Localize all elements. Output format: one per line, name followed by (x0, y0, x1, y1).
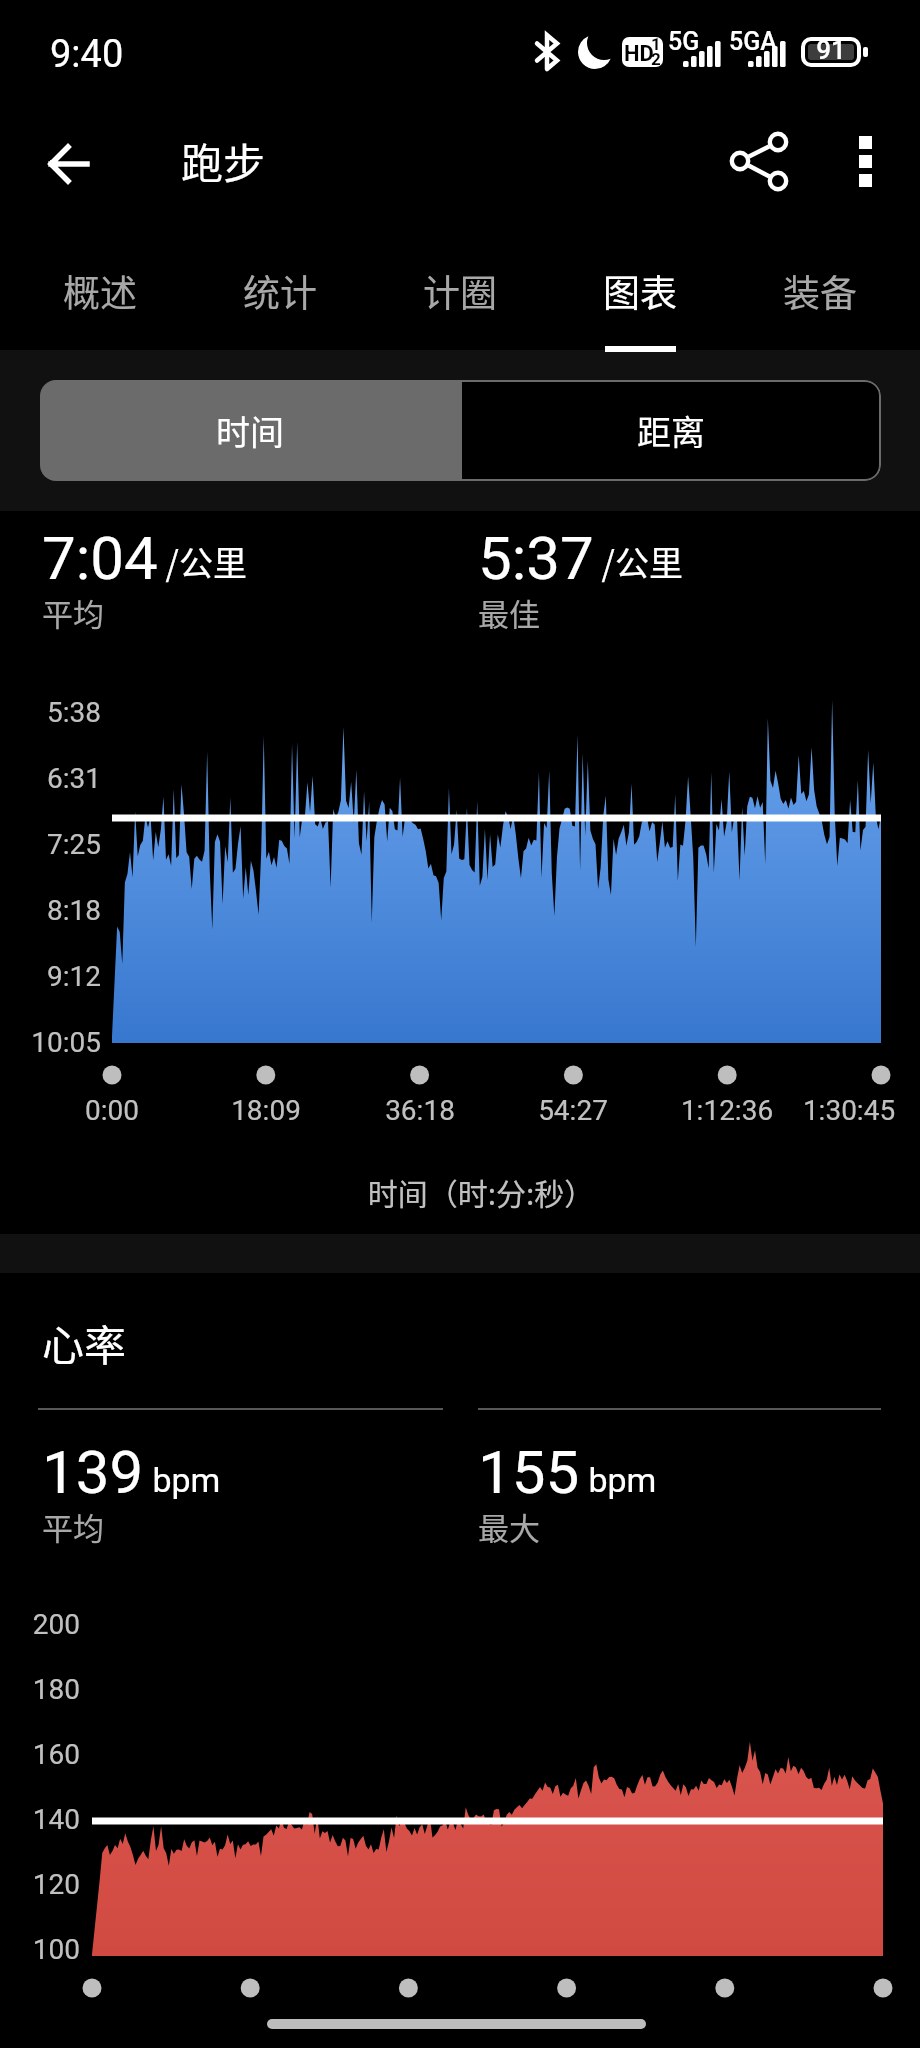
staticText: 5:37 (478, 523, 594, 583)
staticText: 5G (668, 27, 700, 56)
staticText: 54:27 (523, 1094, 623, 1127)
staticText: 36:18 (370, 1094, 470, 1127)
staticText: 9:12 (0, 960, 101, 993)
button[interactable]: 统计 (190, 234, 370, 350)
staticText: 最大 (478, 1504, 540, 1549)
staticText: 图表 (603, 264, 677, 318)
staticText: bpm (580, 1460, 657, 1500)
button[interactable]: 概述 (10, 234, 190, 350)
staticText: 6:31 (0, 762, 101, 795)
button[interactable]: 时间 (40, 380, 460, 481)
staticText: 9:40 (50, 32, 124, 77)
staticText: /公里 (158, 537, 247, 586)
staticText: 160 (0, 1738, 80, 1771)
staticText: 91 (812, 35, 850, 65)
staticText: 5GA (729, 27, 777, 56)
staticText: 200 (0, 1608, 80, 1641)
button[interactable]: 计圈 (370, 234, 550, 350)
staticText: 180 (0, 1673, 80, 1706)
staticText: 统计 (243, 264, 317, 318)
button[interactable]: Back (29, 124, 109, 204)
staticText: 100 (0, 1933, 80, 1966)
staticText: 18:09 (216, 1094, 316, 1127)
staticText: 0:00 (77, 1094, 147, 1127)
staticText: 10:05 (0, 1026, 101, 1059)
staticText: 平均 (42, 590, 104, 635)
staticText: 概述 (63, 264, 137, 318)
staticText: 心率 (42, 1312, 127, 1373)
button[interactable]: 装备 (730, 234, 910, 350)
staticText: 1 (651, 34, 661, 54)
staticText: 2 (651, 49, 661, 69)
button[interactable]: 距离 (460, 380, 881, 481)
staticText: 计圈 (423, 264, 497, 318)
staticText: /公里 (594, 537, 683, 586)
staticText: 140 (0, 1803, 80, 1836)
staticText: HD (624, 41, 654, 67)
staticText: 7:25 (0, 828, 101, 861)
button[interactable]: More options (825, 121, 905, 201)
staticText: 最佳 (478, 590, 540, 635)
button[interactable]: 图表 (550, 234, 730, 350)
staticText: 7:04 (42, 523, 158, 583)
staticText: 时间 (216, 406, 284, 455)
staticText: 装备 (783, 264, 857, 318)
staticText: 5:38 (0, 696, 101, 729)
staticText: 跑步 (181, 130, 266, 191)
staticText: 1:30:45 (784, 1094, 914, 1127)
staticText: bpm (144, 1460, 221, 1500)
staticText: 平均 (42, 1504, 104, 1549)
staticText: 120 (0, 1868, 80, 1901)
staticText: 1:12:36 (662, 1094, 792, 1127)
staticText: 139 (42, 1437, 144, 1497)
staticText: 距离 (637, 406, 705, 455)
button[interactable]: Share (719, 121, 799, 201)
staticText: 155 (478, 1437, 580, 1497)
staticText: 时间（时:分:秒） (21, 1170, 920, 1213)
staticText: 8:18 (0, 894, 101, 927)
